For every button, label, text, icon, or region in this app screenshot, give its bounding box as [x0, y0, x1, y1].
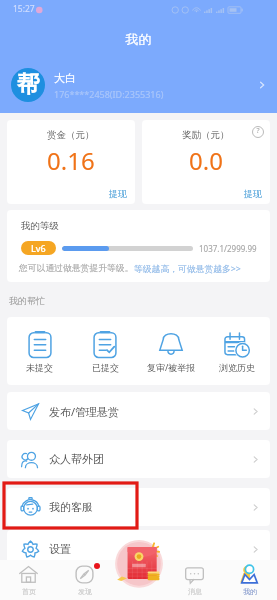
staticText: ? [252, 126, 264, 138]
staticText: 176****2458(ID:2355316) [54, 88, 164, 100]
button[interactable]: 提现 [244, 188, 270, 204]
staticText: 发现 [78, 587, 92, 596]
button[interactable]: 众人帮外团 [7, 440, 270, 478]
button[interactable]: 我的 [222, 560, 277, 600]
button[interactable]: 未提交 [7, 321, 72, 382]
staticText: 我的帮忙 [9, 295, 45, 306]
button[interactable]: 首页 [0, 560, 56, 600]
button[interactable]: 浏览历史 [204, 321, 270, 382]
button[interactable]: 领钱 红包 [113, 543, 165, 583]
staticText: 提现 [244, 188, 262, 199]
staticText: 赏金（元） [47, 129, 95, 141]
button[interactable]: 我的客服 [7, 488, 270, 526]
button[interactable]: 帮 [0, 68, 277, 102]
staticText: 复审/被举报 [147, 361, 196, 373]
staticText: 未提交 [26, 362, 53, 373]
button[interactable]: 等级越高，可做悬赏越多>> [134, 263, 241, 275]
button[interactable]: Help [252, 126, 264, 138]
staticText: 等级越高，可做悬赏越多>> [134, 263, 241, 275]
staticText: 0.16 [47, 144, 95, 177]
staticText: 大白 [54, 71, 76, 85]
staticText: 0.0 [189, 144, 223, 177]
staticText: Lv6 [31, 242, 46, 254]
button[interactable]: 消息 [167, 560, 222, 600]
staticText: 1037.1/2999.99 [199, 243, 257, 254]
staticText: 我的客服 [49, 500, 93, 514]
button[interactable]: 已提交 [72, 321, 138, 382]
staticText: 我的等级 [21, 220, 59, 232]
staticText: 提现 [109, 188, 127, 199]
staticText: 首页 [22, 587, 36, 596]
button[interactable]: 发现 [56, 560, 112, 600]
staticText: 我的 [0, 31, 277, 47]
staticText: 设置 [49, 542, 71, 556]
button[interactable]: 发布/管理悬赏 [7, 392, 270, 430]
staticText: 我的 [243, 587, 257, 596]
staticText: 奖励（元） [182, 129, 230, 141]
staticText: 发布/管理悬赏 [49, 404, 120, 419]
button[interactable]: 提现 [109, 188, 135, 204]
staticText: 15:27 [13, 3, 35, 15]
staticText: 帮 [17, 70, 40, 99]
button[interactable]: 复审/被举报 [138, 320, 204, 382]
staticText: 已提交 [92, 362, 119, 373]
staticText: 消息 [188, 587, 202, 596]
staticText: 您可以通过做悬赏提升等级。 [19, 263, 134, 274]
staticText: 众人帮外团 [49, 452, 104, 466]
button[interactable]: 设置 [7, 530, 270, 568]
staticText: 浏览历史 [219, 362, 255, 373]
